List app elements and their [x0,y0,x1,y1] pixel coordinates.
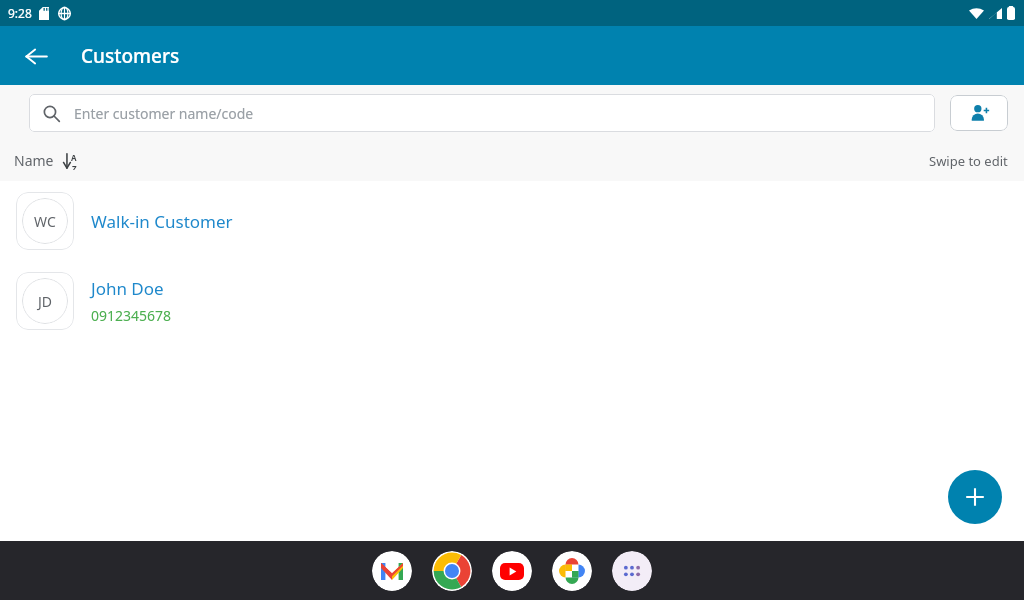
button[interactable]: Chrome [432,551,472,591]
staticText: Walk-in Customer [91,210,233,233]
button[interactable]: Back [14,34,58,78]
staticText: Swipe to edit [929,152,1008,170]
staticText: JD [38,292,53,311]
staticText: Name [14,151,54,170]
button[interactable]: JD [0,261,1024,341]
button[interactable]: Name [14,151,82,170]
button[interactable]: Add customer [950,95,1008,131]
staticText: WC [34,212,56,231]
button[interactable]: Photos [552,551,592,591]
other: Sort A to Z [62,152,82,170]
staticText: 9:28 [8,5,32,21]
button[interactable]: WC [0,181,1024,261]
button[interactable]: YouTube [492,551,532,591]
staticText: Customers [81,43,180,69]
button[interactable]: Add [948,470,1002,524]
button[interactable]: All apps [612,551,652,591]
staticText: Z [72,163,77,170]
button[interactable]: Gmail [372,551,412,591]
staticText: John Doe [91,277,164,300]
button[interactable]: Swipe to edit [929,152,1008,170]
staticText: 0912345678 [91,306,172,325]
staticText: A [71,152,77,163]
button[interactable]: Enter customer name/code [29,94,935,132]
staticText: Enter customer name/code [74,104,254,123]
